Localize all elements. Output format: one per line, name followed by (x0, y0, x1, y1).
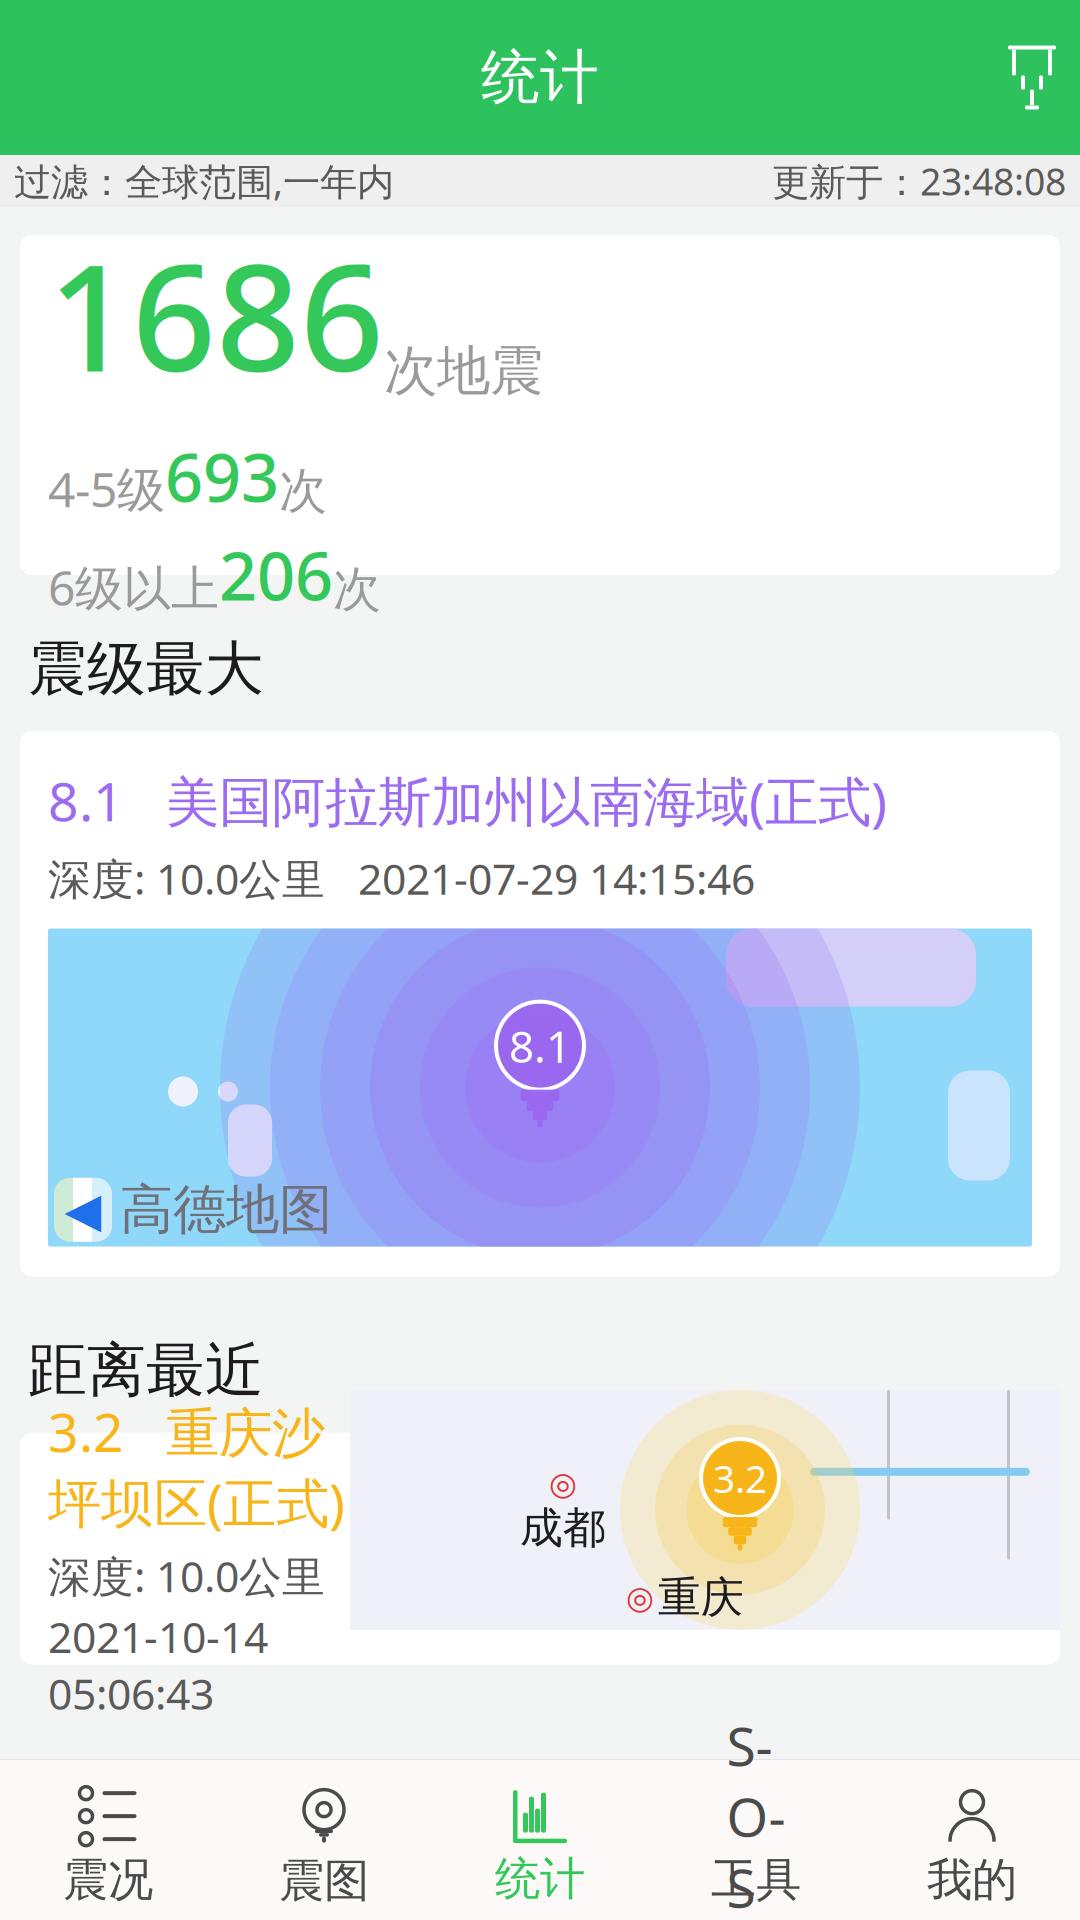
staticText: 震级最大 (28, 633, 264, 705)
staticText: 过滤：全球范围,一年内 (14, 156, 394, 206)
button[interactable]: SOS (648, 1760, 864, 1920)
staticText: 高德地图 (120, 1177, 332, 1242)
staticText: 6级以上 (48, 555, 219, 619)
button[interactable]: 震图 (216, 1760, 432, 1920)
staticText: ◎ (549, 1465, 577, 1502)
button[interactable]: 3.2 重庆沙坪坝区(正式) (20, 1433, 1060, 1665)
staticText: 206 (219, 530, 333, 619)
staticText: SOS (726, 1710, 785, 1920)
staticText: 8.1 (509, 1016, 571, 1075)
staticText: 深度: 10.0公里 (48, 1547, 325, 1604)
staticText: 4-5级 (48, 457, 165, 520)
staticText: 重庆 (658, 1571, 744, 1624)
button[interactable]: 筛选 (984, 31, 1080, 123)
staticText: 3.2 重庆沙坪坝区(正式) (48, 1396, 345, 1537)
staticText: 成都 (520, 1502, 606, 1554)
staticText: 693 (165, 432, 279, 520)
staticText: 震图 (279, 1853, 369, 1909)
staticText: 工具 (711, 1852, 801, 1908)
button[interactable]: 我的 (864, 1760, 1080, 1920)
staticText: 2021-10-14 05:06:43 (48, 1608, 268, 1721)
staticText: 次 (333, 560, 381, 619)
staticText: 距离最近 (28, 1334, 264, 1407)
staticText: 统计 (495, 1851, 585, 1907)
staticText: ◎ (626, 1579, 654, 1616)
staticText: 震况 (63, 1852, 153, 1908)
staticText: 8.1 美国阿拉斯加州以南海域(正式) (48, 765, 887, 836)
staticText: ◀ (64, 1183, 101, 1237)
staticText: 3.2 (713, 1452, 767, 1504)
staticText: 1686 (48, 217, 384, 412)
staticText: 次地震 (384, 338, 543, 404)
staticText: 更新于：23:48:08 (772, 156, 1066, 206)
button[interactable]: 统计 (432, 1760, 648, 1920)
staticText: 深度: 10.0公里 2021-07-29 14:15:46 (48, 850, 755, 907)
button[interactable]: 8.1 美国阿拉斯加州以南海域(正式) (20, 731, 1060, 1277)
button[interactable]: 震况 (0, 1760, 216, 1920)
staticText: 次 (279, 461, 327, 520)
staticText: 统计 (481, 41, 599, 114)
staticText: 我的 (927, 1852, 1017, 1908)
